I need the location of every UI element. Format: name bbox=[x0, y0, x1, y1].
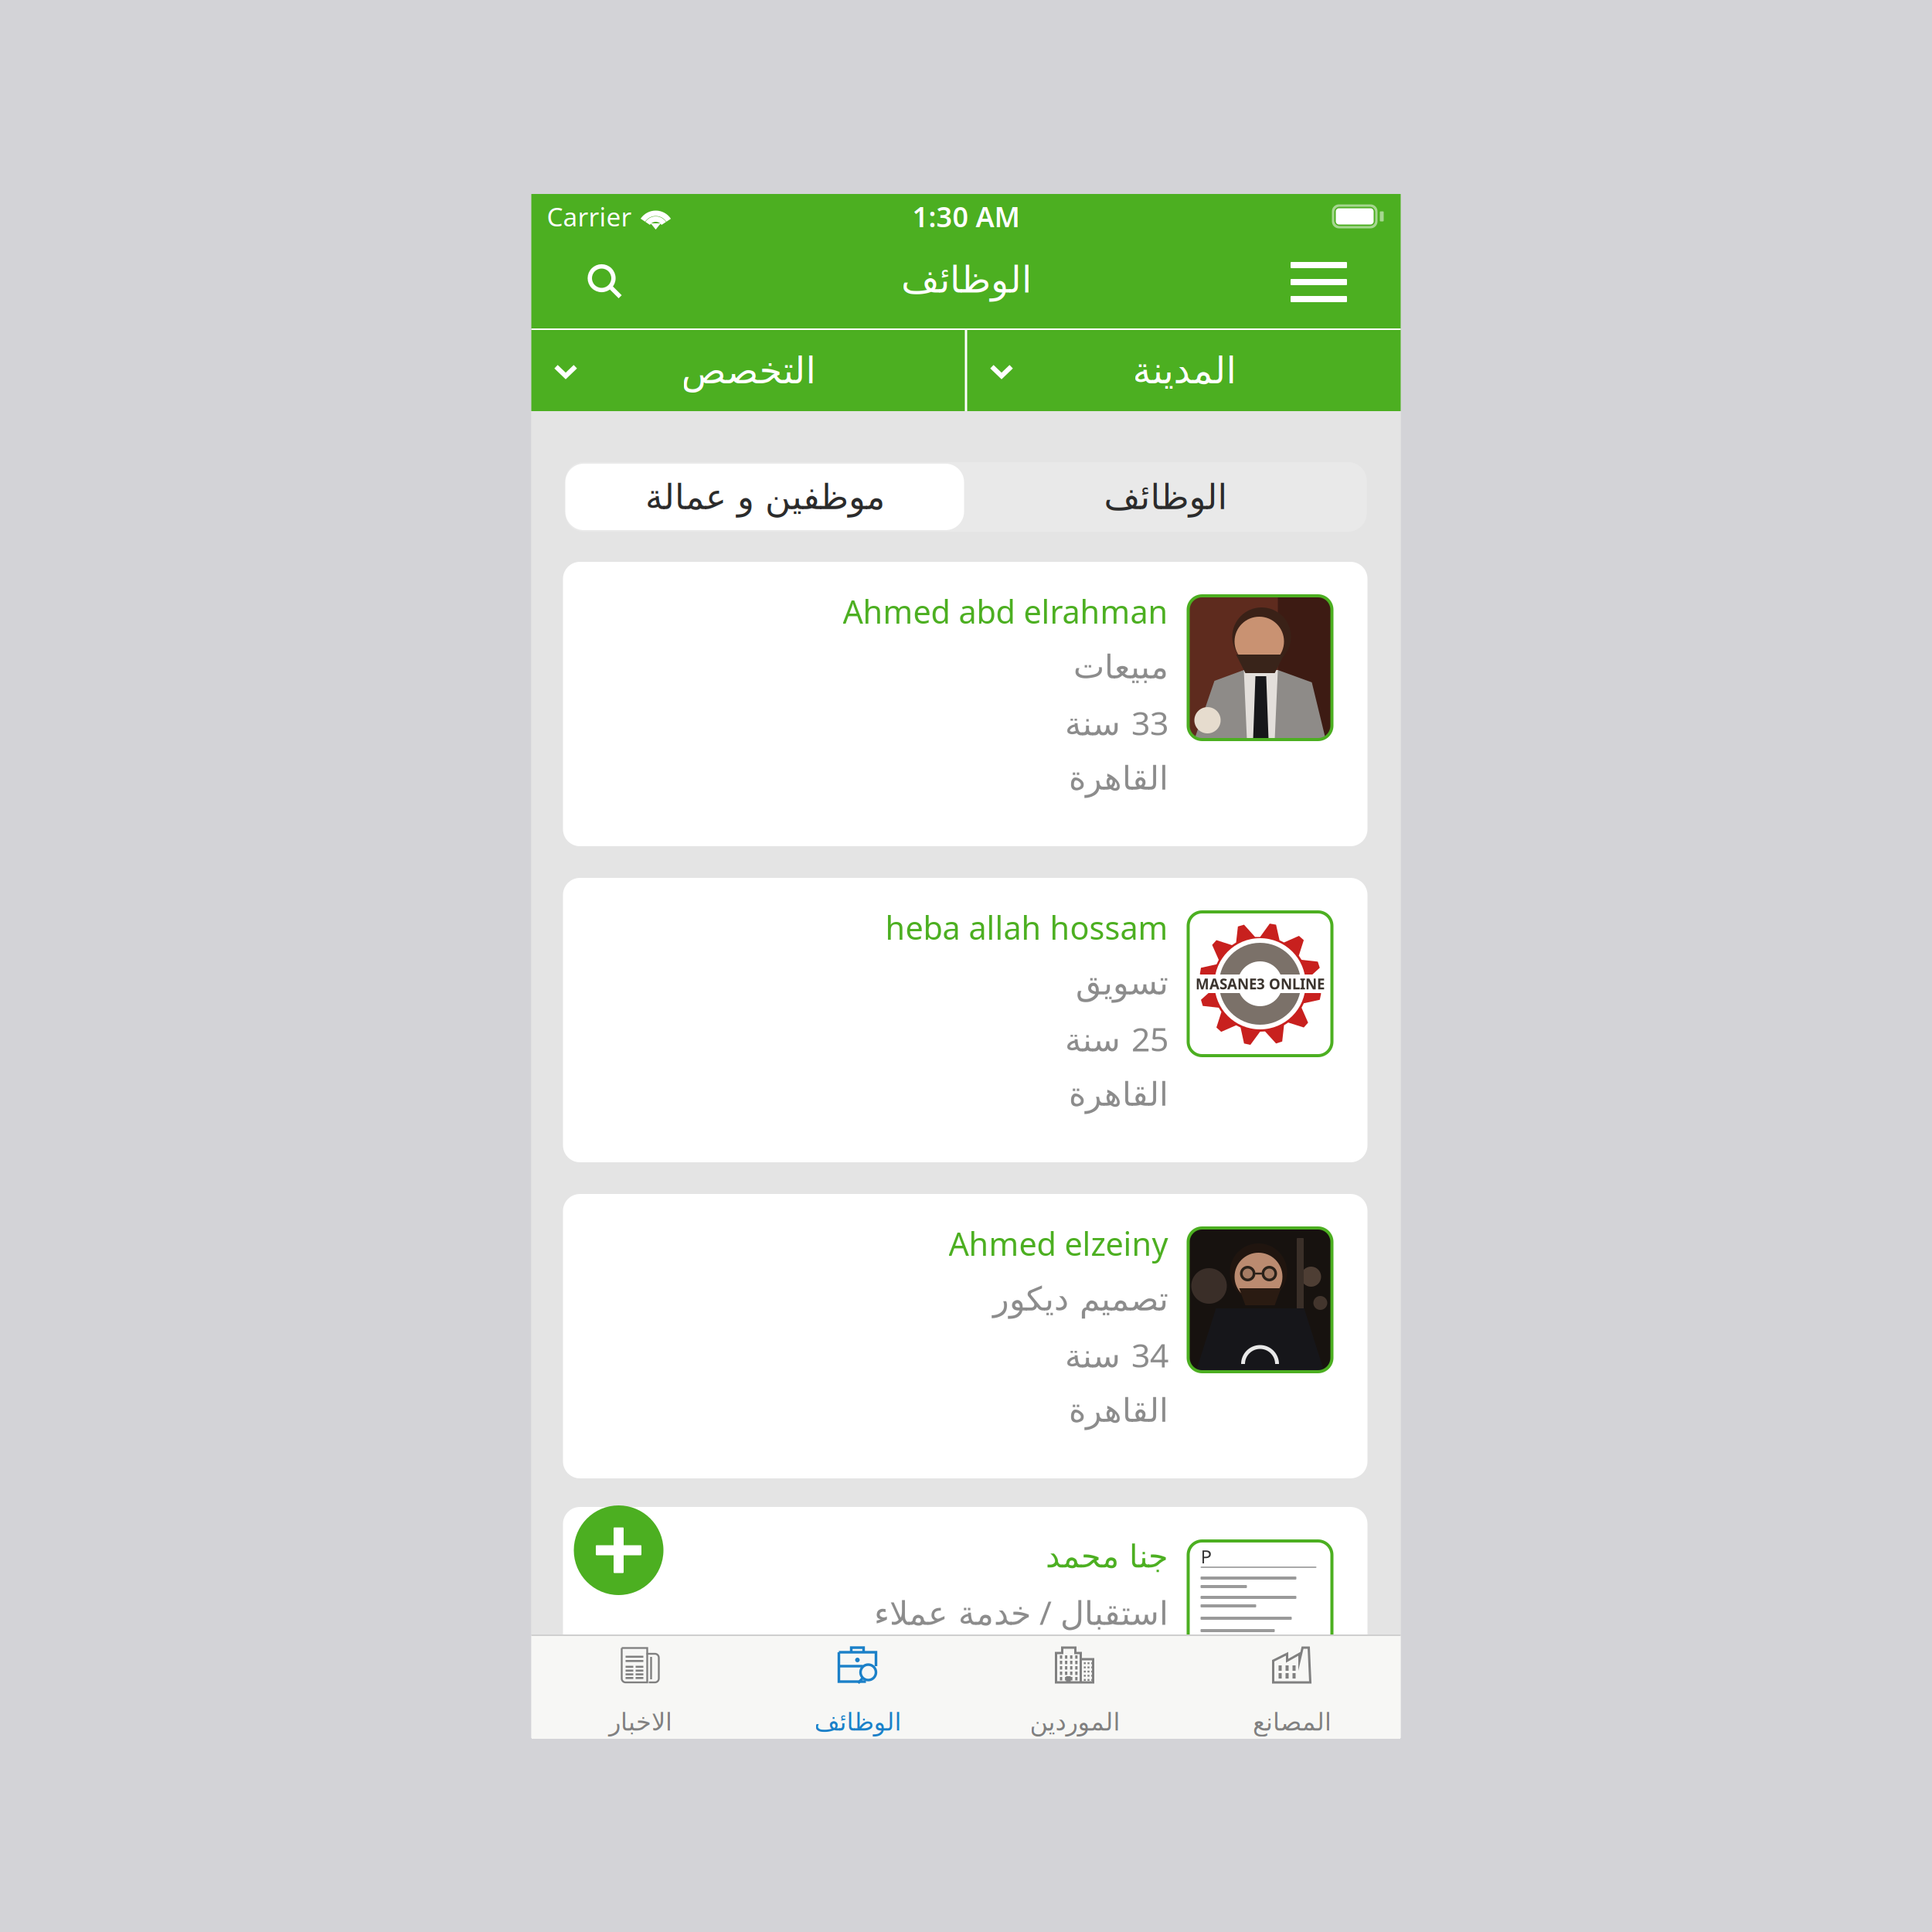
button[interactable]: الموردين bbox=[966, 1636, 1183, 1739]
staticText: جنا محمد bbox=[1045, 1538, 1168, 1575]
staticText: مبيعات bbox=[1073, 648, 1168, 686]
button[interactable]: المصانع bbox=[1183, 1636, 1400, 1739]
button[interactable]: heba allah hossam bbox=[563, 878, 1367, 1162]
staticText: Ahmed abd elrahman bbox=[843, 590, 1168, 633]
staticText: استقبال / خدمة عملاء bbox=[874, 1590, 1168, 1634]
staticText: Carrier bbox=[547, 199, 632, 234]
staticText: المصانع bbox=[1252, 1708, 1331, 1736]
staticText: 1:30 AM bbox=[912, 198, 1020, 235]
button[interactable]: Search bbox=[562, 239, 649, 325]
staticText: القاهرة bbox=[1068, 1392, 1168, 1429]
button[interactable]: Ahmed abd elrahman bbox=[563, 562, 1367, 846]
button[interactable]: الوظائف bbox=[749, 1636, 966, 1739]
staticText: heba allah hossam bbox=[885, 906, 1168, 949]
staticText: موظفين و عمالة bbox=[645, 477, 884, 517]
staticText: الوظائف bbox=[814, 1708, 901, 1736]
button[interactable]: التخصص bbox=[531, 330, 965, 411]
button[interactable]: Ahmed elzeiny bbox=[563, 1194, 1367, 1478]
staticText: Ahmed elzeiny bbox=[949, 1222, 1168, 1265]
button[interactable]: الاخبار bbox=[532, 1636, 749, 1739]
staticText: P bbox=[1201, 1544, 1212, 1569]
staticText: 33 سنة bbox=[1065, 701, 1168, 745]
staticText: الوظائف bbox=[901, 259, 1031, 301]
staticText: 25 سنة bbox=[1065, 1017, 1168, 1061]
staticText: الموردين bbox=[1029, 1708, 1120, 1736]
button[interactable]: الوظائف bbox=[964, 462, 1367, 532]
staticText: الاخبار bbox=[609, 1708, 672, 1736]
staticText: القاهرة bbox=[1068, 1076, 1168, 1113]
staticText: القاهرة bbox=[1068, 760, 1168, 797]
staticText: المدينة bbox=[1132, 350, 1236, 392]
staticText: الوظائف bbox=[1104, 477, 1227, 517]
button[interactable] bbox=[574, 1505, 663, 1595]
staticText: 34 سنة bbox=[1065, 1333, 1168, 1377]
staticText: MASANE3 ONLINE bbox=[1196, 974, 1325, 993]
staticText: تصميم ديكور bbox=[993, 1280, 1168, 1318]
staticText: التخصص bbox=[681, 350, 815, 392]
button[interactable]: جنا محمد bbox=[563, 1507, 1367, 1791]
button[interactable]: Menu bbox=[1276, 239, 1362, 325]
button[interactable]: موظفين و عمالة bbox=[565, 464, 964, 530]
staticText: تسويق bbox=[1075, 964, 1168, 1002]
button[interactable]: المدينة bbox=[967, 330, 1401, 411]
